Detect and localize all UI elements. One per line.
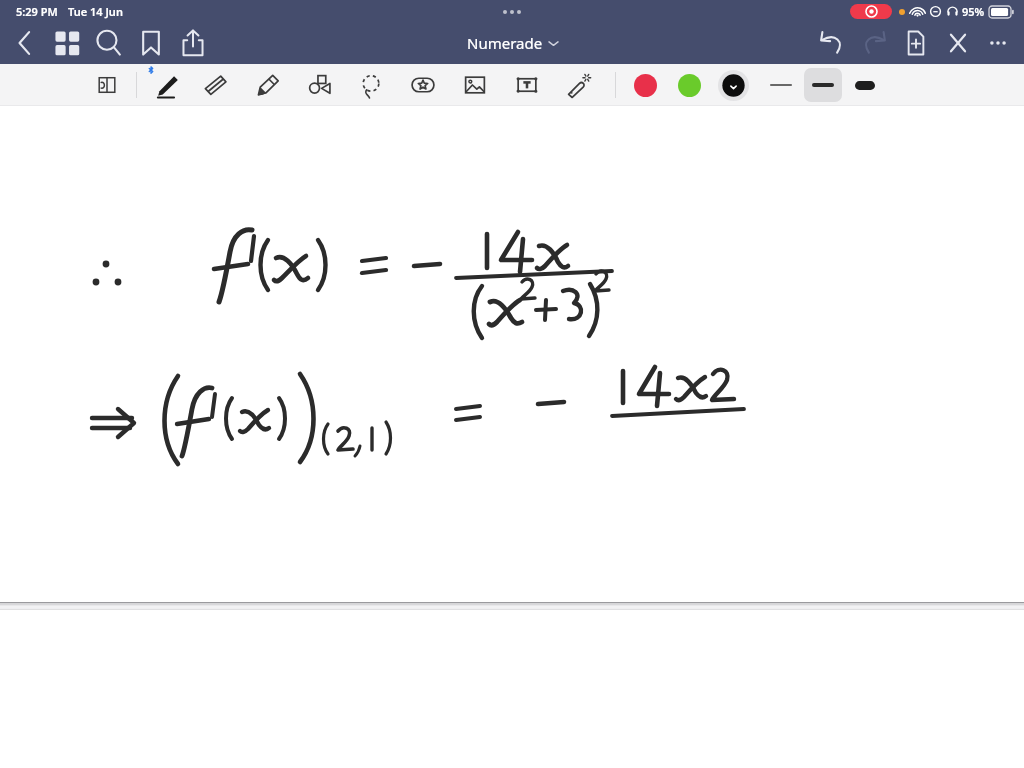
button[interactable]: Search [92,26,126,60]
button[interactable]: Share [176,26,210,60]
button[interactable]: Text box [501,64,553,106]
button[interactable]: Undo [816,27,848,59]
staticText: Numerade [467,33,543,53]
button[interactable]: Red colour [628,68,662,102]
button[interactable]: Numerade [467,33,558,53]
button[interactable]: Shapes [293,64,345,106]
button[interactable]: Add page [900,27,932,59]
button[interactable]: Medium stroke, selected [804,68,842,102]
button[interactable]: Close [942,27,974,59]
button[interactable]: Page peel [84,64,130,106]
button[interactable]: Black colour, selected [716,68,750,102]
staticText: 5:29 PM [16,4,58,19]
button[interactable]: Sticker [397,64,449,106]
button[interactable]: Highlighter [241,64,293,106]
button[interactable]: Pen [143,64,189,106]
button[interactable]: Lasso select [345,64,397,106]
button[interactable]: More options [982,27,1014,59]
button[interactable]: Laser pointer [553,64,605,106]
button[interactable]: Redo [858,27,890,59]
button[interactable]: Thick stroke [846,68,884,102]
button[interactable]: Pages [50,26,84,60]
button[interactable]: Bookmark [134,26,168,60]
button[interactable]: Green colour [672,68,706,102]
button[interactable]: Eraser [189,64,241,106]
staticText: Tue 14 Jun [68,4,123,19]
staticText: 95% [962,4,985,19]
button[interactable]: Insert image [449,64,501,106]
button[interactable]: Back [8,26,42,60]
button[interactable]: Thin stroke [762,68,800,102]
